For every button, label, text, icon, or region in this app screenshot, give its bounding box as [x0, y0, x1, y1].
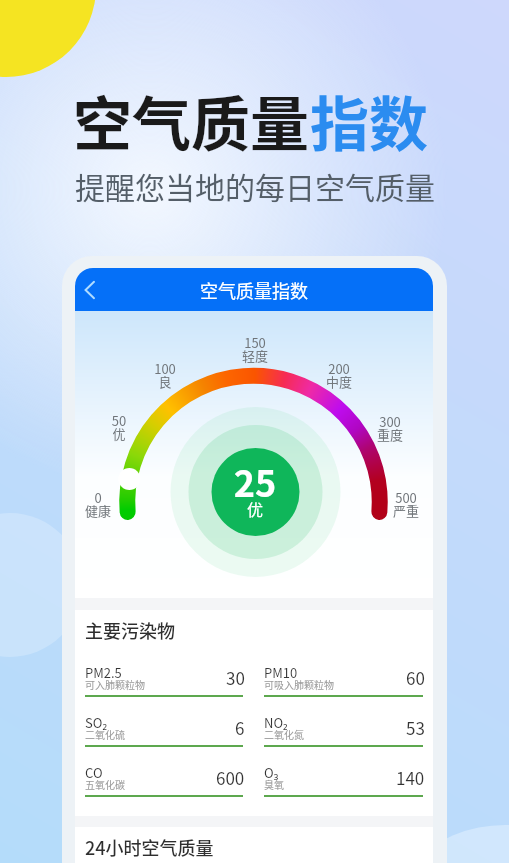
staticText: 提醒您当地的每日空气质量 — [75, 164, 435, 207]
staticText: 轻度 — [225, 346, 285, 365]
staticText: 五氧化碳 — [85, 777, 125, 791]
staticText: 0 — [75, 488, 128, 507]
button[interactable]: NO₂ — [264, 712, 423, 737]
staticText: 30 — [226, 665, 245, 690]
staticText: 臭氧 — [264, 777, 284, 791]
staticText: 空气质量 — [73, 78, 310, 163]
button[interactable]: O₃ — [264, 762, 423, 787]
staticText: 空气质量指数 — [200, 277, 308, 303]
staticText: 可吸入肺颗粒物 — [264, 677, 334, 691]
button[interactable]: Back — [75, 273, 109, 307]
staticText: 200 — [309, 359, 369, 378]
staticText: 可入肺颗粒物 — [85, 677, 145, 691]
staticText: 500 — [376, 488, 433, 507]
staticText: 6 — [235, 715, 245, 740]
staticText: 二氧化氮 — [264, 727, 304, 741]
staticText: 24小时空气质量 — [85, 834, 214, 860]
staticText: NO₂ — [264, 713, 288, 732]
button[interactable]: PM10 — [264, 662, 423, 687]
staticText: SO₂ — [85, 713, 107, 732]
staticText: 良 — [135, 372, 195, 391]
staticText: 25 — [205, 455, 305, 507]
staticText: 重度 — [360, 425, 420, 444]
staticText: 53 — [406, 715, 425, 740]
staticText: 60 — [406, 665, 425, 690]
staticText: PM10 — [264, 663, 298, 682]
button[interactable]: SO₂ — [85, 712, 243, 737]
staticText: 100 — [135, 359, 195, 378]
staticText: 健康 — [75, 501, 128, 520]
staticText: 150 — [225, 333, 285, 352]
staticText: 主要污染物 — [85, 617, 175, 643]
staticText: 50 — [89, 411, 149, 430]
staticText: O₃ — [264, 763, 279, 782]
staticText: 优 — [89, 424, 149, 443]
staticText: 优 — [205, 497, 305, 520]
staticText: 140 — [396, 765, 425, 790]
staticText: 600 — [216, 765, 245, 790]
button[interactable]: PM2.5 — [85, 662, 243, 687]
staticText: 指数 — [310, 78, 429, 163]
staticText: 中度 — [309, 372, 369, 391]
staticText: CO — [85, 763, 103, 782]
button[interactable]: CO — [85, 762, 243, 787]
staticText: 二氧化硫 — [85, 727, 125, 741]
staticText: 300 — [360, 412, 420, 431]
staticText: 严重 — [376, 501, 433, 520]
staticText: PM2.5 — [85, 663, 122, 682]
